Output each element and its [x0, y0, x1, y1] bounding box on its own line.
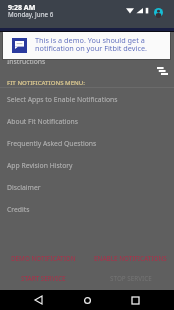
staticText: FIT NOTIFICATIONS MENU:	[7, 78, 85, 86]
staticText: Credits	[7, 205, 30, 214]
button[interactable]: Select Apps to Enable Notifications	[0, 88, 174, 110]
staticText: Frequently Asked Questions	[7, 139, 97, 148]
staticText: Select Apps to Enable Notifications	[7, 95, 118, 104]
button[interactable]: Instructions	[0, 54, 174, 68]
button[interactable]: ENABLE NOTIFICATIONS	[87, 248, 174, 268]
button[interactable]: App Revision History	[0, 154, 174, 176]
staticText: Monday, June 6	[8, 10, 54, 19]
staticText: notification on your Fitbit device.	[35, 43, 147, 53]
staticText: About Fit Notifications	[7, 117, 78, 126]
button[interactable]: Sort	[152, 61, 172, 81]
button[interactable]: START SERVICE	[0, 268, 87, 288]
button[interactable]: DEMO NOTIFICATION	[0, 248, 87, 268]
button[interactable]: Recents	[125, 290, 146, 310]
button[interactable]: Back	[28, 290, 49, 310]
staticText: Disclaimer	[7, 183, 41, 192]
staticText: App Revision History	[7, 161, 73, 170]
button[interactable]: Home	[77, 290, 98, 310]
staticText: START SERVICE	[21, 274, 66, 283]
staticText: 9:28 AM	[8, 3, 36, 13]
button[interactable]: Account	[154, 8, 163, 17]
button[interactable]: This is a demo. You should get a	[3, 32, 170, 59]
staticText: STOP SERVICE	[110, 274, 152, 283]
button[interactable]: Disclaimer	[0, 176, 174, 198]
staticText: DEMO NOTIFICATION	[11, 254, 76, 263]
button[interactable]: Credits	[0, 198, 174, 220]
staticText: ENABLE NOTIFICATIONS	[94, 254, 167, 263]
staticText: Instructions	[7, 57, 46, 66]
button[interactable]: About Fit Notifications	[0, 110, 174, 132]
staticText: This is a demo. You should get a	[35, 35, 145, 45]
button[interactable]: Frequently Asked Questions	[0, 132, 174, 154]
